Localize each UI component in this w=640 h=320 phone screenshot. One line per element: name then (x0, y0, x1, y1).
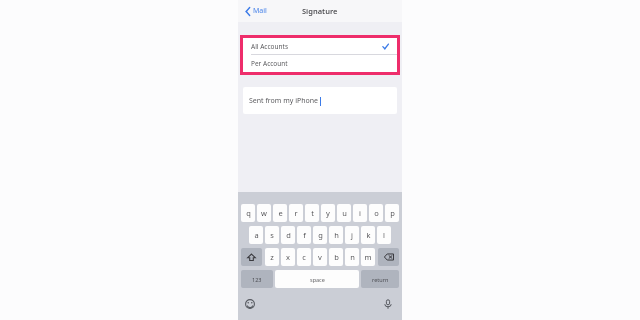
staticText: r (294, 208, 298, 218)
button[interactable]: v (313, 248, 327, 266)
staticText: q (246, 208, 251, 218)
staticText: Signature (302, 6, 338, 16)
staticText: Per Account (251, 59, 288, 68)
button[interactable]: z (265, 248, 279, 266)
button[interactable]: r (289, 204, 303, 222)
button[interactable]: o (369, 204, 383, 222)
staticText: u (342, 208, 347, 218)
staticText: f (303, 230, 306, 240)
staticText: Mail (253, 6, 267, 16)
button[interactable]: k (361, 226, 375, 244)
button[interactable]: y (321, 204, 335, 222)
staticText: g (318, 230, 323, 240)
button[interactable]: Emoji (244, 298, 256, 310)
button[interactable]: Dictation (382, 298, 394, 310)
staticText: j (351, 230, 353, 240)
staticText: v (318, 252, 322, 262)
button[interactable]: p (385, 204, 399, 222)
button[interactable]: space (275, 270, 359, 288)
staticText: s (270, 230, 274, 240)
staticText: x (286, 252, 290, 262)
staticText: z (270, 252, 274, 262)
staticText: 123 (252, 276, 262, 283)
staticText: Sent from my iPhone (249, 96, 319, 106)
button[interactable]: u (337, 204, 351, 222)
button[interactable]: n (345, 248, 359, 266)
button[interactable]: Per Account (243, 55, 397, 72)
button[interactable]: All Accounts (243, 38, 397, 54)
staticText: w (261, 208, 267, 218)
button[interactable]: Backspace (378, 248, 399, 266)
staticText: o (374, 208, 379, 218)
staticText: b (334, 252, 339, 262)
staticText: l (383, 230, 385, 240)
button[interactable]: b (329, 248, 343, 266)
staticText: return (372, 276, 389, 283)
button[interactable]: s (265, 226, 279, 244)
staticText: space (310, 276, 325, 283)
button[interactable]: g (313, 226, 327, 244)
staticText: h (334, 230, 339, 240)
staticText: a (254, 230, 259, 240)
button[interactable]: c (297, 248, 311, 266)
staticText: i (359, 208, 361, 218)
button[interactable]: m (361, 248, 375, 266)
button[interactable]: h (329, 226, 343, 244)
button[interactable]: q (241, 204, 255, 222)
button[interactable]: d (281, 226, 295, 244)
button[interactable]: f (297, 226, 311, 244)
staticText: c (302, 252, 306, 262)
button[interactable]: return (361, 270, 399, 288)
staticText: m (364, 252, 372, 262)
staticText: y (326, 208, 330, 218)
button[interactable]: x (281, 248, 295, 266)
button[interactable]: 123 (241, 270, 273, 288)
button[interactable]: a (249, 226, 263, 244)
button[interactable]: j (345, 226, 359, 244)
button[interactable]: Sent from my iPhone (243, 87, 397, 114)
button[interactable]: w (257, 204, 271, 222)
staticText: p (390, 208, 395, 218)
button[interactable]: t (305, 204, 319, 222)
staticText: t (311, 208, 314, 218)
staticText: All Accounts (251, 42, 289, 51)
button[interactable]: l (377, 226, 391, 244)
staticText: d (286, 230, 291, 240)
button[interactable]: e (273, 204, 287, 222)
button[interactable]: Shift (241, 248, 262, 266)
button[interactable]: Mail (242, 3, 270, 19)
staticText: e (278, 208, 283, 218)
staticText: k (366, 230, 371, 240)
staticText: n (350, 252, 355, 262)
button[interactable]: i (353, 204, 367, 222)
